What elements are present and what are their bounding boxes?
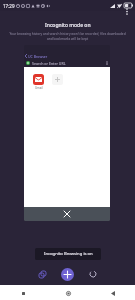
staticText: Gmail xyxy=(35,86,43,90)
staticText: UC Browser xyxy=(28,54,48,59)
button[interactable]: Home xyxy=(61,286,75,300)
button[interactable]: Add shortcut xyxy=(52,74,63,85)
staticText: Search or Enter URL xyxy=(32,61,66,66)
staticText: Your browsing history and search history… xyxy=(9,32,126,41)
button[interactable]: Recent apps xyxy=(16,286,30,300)
staticText: Incognito Browsing is on xyxy=(44,251,93,257)
button[interactable]: Refresh xyxy=(85,266,101,282)
button[interactable]: More options xyxy=(121,5,133,17)
staticText: 17:29 xyxy=(3,3,15,9)
button[interactable]: Tabs xyxy=(34,266,50,282)
button[interactable]: Back xyxy=(106,286,120,300)
button[interactable]: Close tab xyxy=(24,207,110,221)
button[interactable]: UC Browser xyxy=(24,45,110,221)
staticText: Incognito mode on xyxy=(45,22,91,29)
button[interactable]: New tab xyxy=(61,268,74,281)
